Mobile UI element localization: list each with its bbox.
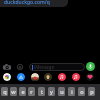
button[interactable]: duckduckgo.com/q [0, 0, 68, 7]
button[interactable]: Camera [1, 61, 13, 73]
staticText: duckduckgo.com/q [4, 0, 50, 6]
button[interactable]: Apps [14, 61, 26, 73]
staticText: iMessage [34, 64, 54, 70]
button[interactable]: App [17, 73, 25, 81]
staticText: w [11, 88, 16, 95]
button[interactable]: iMessage [29, 63, 85, 71]
button[interactable]: t [38, 87, 45, 96]
button[interactable]: w [10, 87, 17, 96]
staticText: e [21, 88, 25, 95]
button[interactable]: App [86, 73, 94, 81]
staticText: u [60, 88, 64, 95]
staticText: t [41, 88, 43, 95]
staticText: r [30, 88, 33, 95]
button[interactable]: App [58, 73, 66, 81]
button[interactable]: Send audio message [86, 62, 95, 71]
button[interactable]: App [72, 73, 80, 81]
button[interactable]: App [31, 73, 39, 81]
button[interactable]: i [68, 87, 75, 96]
staticText: q [3, 88, 7, 95]
button[interactable]: u [58, 87, 65, 96]
staticText: i [71, 88, 73, 95]
button[interactable]: q [1, 87, 8, 96]
button[interactable]: e [19, 87, 26, 96]
button[interactable]: r [28, 87, 35, 96]
staticText: p [90, 88, 94, 95]
staticText: y [50, 88, 53, 95]
button[interactable]: o [78, 87, 85, 96]
staticText: o [80, 88, 84, 95]
button[interactable]: App [3, 73, 11, 81]
button[interactable]: y [48, 87, 55, 96]
button[interactable]: p [88, 87, 95, 96]
button[interactable]: App [44, 73, 52, 81]
